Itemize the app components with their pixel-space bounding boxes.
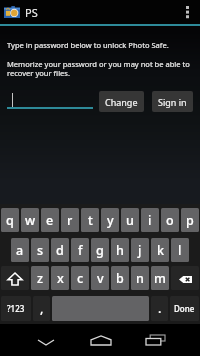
staticText: z [37, 270, 43, 287]
button[interactable]: d [51, 238, 69, 262]
staticText: . [158, 300, 162, 317]
other: Delete [179, 276, 192, 283]
staticText: p [186, 212, 194, 229]
button[interactable]: ?123 [1, 296, 31, 321]
button[interactable]: Back [18, 324, 73, 356]
staticText: w [25, 212, 36, 229]
button[interactable]: c [71, 266, 89, 290]
staticText: i [148, 212, 152, 229]
button[interactable]: h [111, 238, 129, 262]
button[interactable]: v [91, 266, 109, 290]
staticText: Type in password below to unlock Photo S… [7, 40, 169, 50]
button[interactable]: b [111, 266, 129, 290]
button[interactable]: g [91, 238, 109, 262]
staticText: b [116, 270, 124, 287]
button[interactable]: u [121, 208, 139, 232]
staticText: Done [174, 303, 195, 314]
button[interactable]: p [181, 208, 199, 232]
button[interactable]: e [41, 208, 59, 232]
staticText: r [67, 212, 73, 229]
staticText: e [46, 212, 54, 229]
button[interactable]: Done [170, 296, 199, 321]
staticText: s [37, 242, 44, 259]
button[interactable]: o [161, 208, 179, 232]
staticText: o [166, 212, 174, 229]
button[interactable]: Change [99, 91, 144, 112]
button[interactable]: s [31, 238, 49, 262]
button[interactable]: Delete [171, 266, 199, 290]
staticText: c [77, 270, 84, 287]
staticText: y [107, 212, 114, 229]
button[interactable]: z [31, 266, 49, 290]
staticText: j [138, 242, 142, 259]
button[interactable]: t [81, 208, 99, 232]
button[interactable]: m [151, 266, 169, 290]
staticText: Change [105, 96, 138, 108]
button[interactable]: r [61, 208, 79, 232]
button[interactable]: Sign in [152, 91, 193, 112]
staticText: k [157, 242, 164, 259]
button[interactable]: q [1, 208, 19, 232]
button[interactable]: a [11, 238, 29, 262]
button[interactable]: k [151, 238, 169, 262]
staticText: n [136, 270, 144, 287]
staticText: a [16, 242, 24, 259]
staticText: v [97, 270, 104, 287]
button[interactable]: , [33, 296, 50, 321]
button[interactable]: More options [178, 0, 196, 24]
button[interactable]: l [171, 238, 189, 262]
staticText: , [40, 300, 44, 317]
staticText: PS [25, 5, 38, 20]
staticText: Memorize your password or you may not be… [7, 59, 193, 79]
button[interactable]: j [131, 238, 149, 262]
button[interactable]: Shift [1, 266, 29, 290]
staticText: m [154, 270, 166, 287]
staticText: ?123 [7, 303, 25, 314]
other: Shift [8, 273, 22, 285]
staticText: g [96, 242, 104, 259]
button[interactable]: i [141, 208, 159, 232]
staticText: d [56, 242, 64, 259]
button[interactable]: Recent apps [128, 324, 183, 356]
button[interactable]: f [71, 238, 89, 262]
staticText: f [78, 242, 83, 259]
staticText: q [6, 212, 14, 229]
button[interactable]: y [101, 208, 119, 232]
staticText: Sign in [158, 96, 187, 108]
staticText: l [178, 242, 182, 259]
staticText: t [88, 212, 93, 229]
button[interactable]: x [51, 266, 69, 290]
staticText: x [57, 270, 64, 287]
button[interactable]: . [151, 296, 168, 321]
button[interactable]: Home [73, 324, 128, 356]
staticText: h [116, 242, 124, 259]
staticText: u [126, 212, 134, 229]
button[interactable]: n [131, 266, 149, 290]
button[interactable]: w [21, 208, 39, 232]
